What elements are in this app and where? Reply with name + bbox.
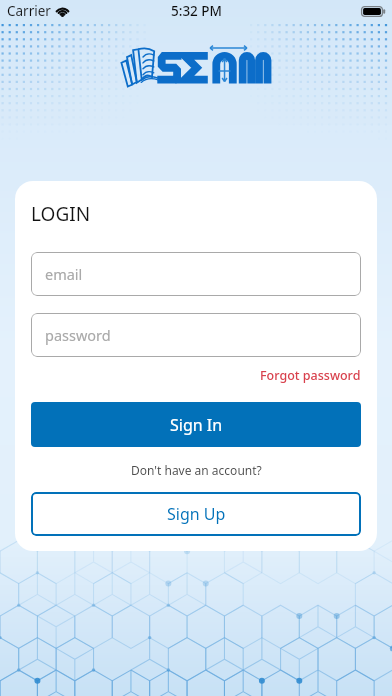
- button[interactable]: Forgot password: [255, 365, 361, 385]
- staticText: email: [45, 264, 83, 284]
- staticText: Sign Up: [167, 503, 226, 525]
- button[interactable]: email: [31, 252, 361, 296]
- staticText: password: [45, 325, 111, 345]
- staticText: LOGIN: [31, 201, 91, 227]
- staticText: Sign In: [170, 414, 223, 436]
- staticText: Don't have an account?: [131, 462, 262, 478]
- staticText: Carrier: [7, 2, 51, 20]
- staticText: 5:32 PM: [171, 2, 222, 20]
- button[interactable]: Sign In: [31, 402, 361, 447]
- button[interactable]: Sign Up: [31, 492, 361, 536]
- staticText: Forgot password: [260, 367, 361, 384]
- button[interactable]: Don't have an account?: [31, 461, 361, 479]
- button[interactable]: password: [31, 313, 361, 357]
